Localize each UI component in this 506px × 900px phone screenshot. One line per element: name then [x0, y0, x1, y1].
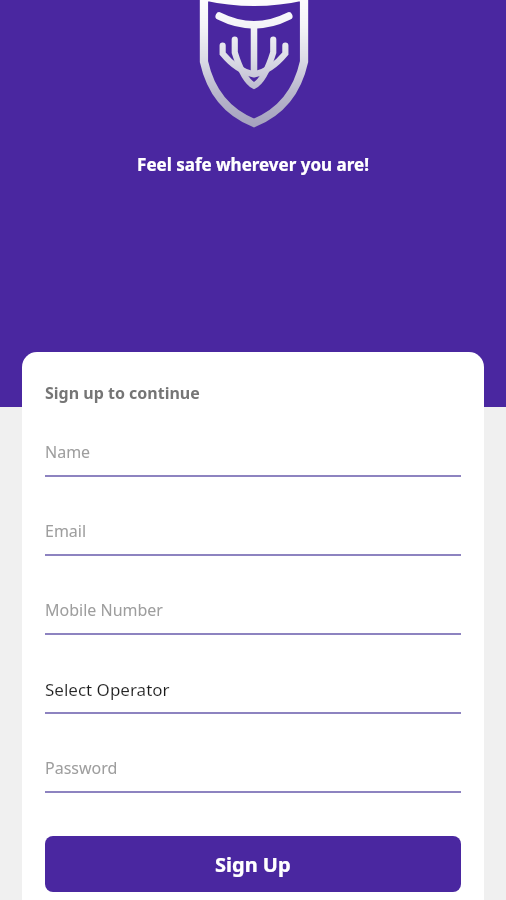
staticText: Email [45, 520, 87, 542]
staticText: Sign Up [215, 851, 291, 878]
button[interactable]: Name [45, 429, 461, 477]
button[interactable]: Email [45, 508, 461, 556]
staticText: Sign up to continue [45, 382, 200, 404]
staticText: Feel safe wherever you are! [137, 153, 369, 176]
staticText: Password [45, 757, 118, 779]
button[interactable]: Sign Up [45, 836, 461, 892]
button[interactable]: Password [45, 745, 461, 793]
staticText: Mobile Number [45, 599, 163, 621]
staticText: Select Operator [45, 678, 170, 701]
button[interactable]: Select Operator [45, 666, 461, 714]
staticText: Name [45, 441, 91, 463]
button[interactable]: Mobile Number [45, 587, 461, 635]
